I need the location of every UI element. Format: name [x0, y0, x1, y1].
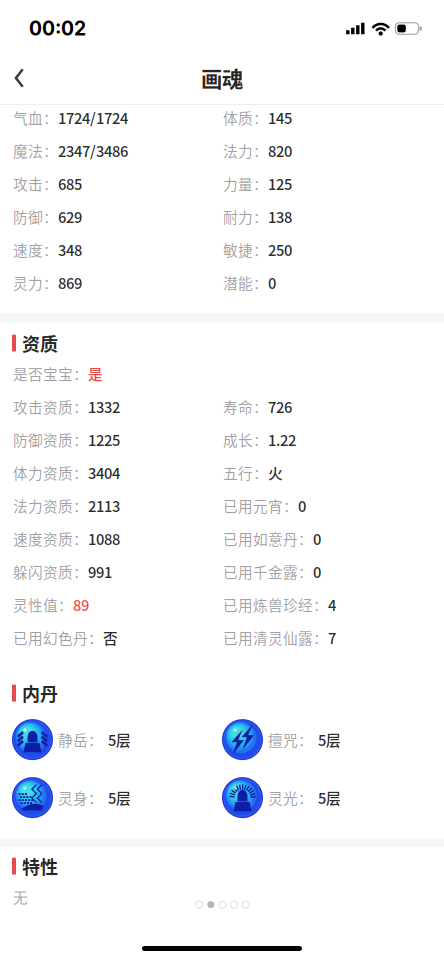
staticText: 已用元宵： — [223, 495, 298, 516]
staticText: 法力资质： — [13, 495, 88, 516]
staticText: 0 — [298, 495, 306, 516]
staticText: 1225 — [88, 429, 120, 450]
staticText: 灵身： — [58, 787, 103, 808]
staticText: 特性 — [22, 853, 58, 879]
staticText: 否 — [103, 627, 118, 648]
staticText: 速度资质： — [13, 528, 88, 549]
staticText: 5层 — [108, 729, 131, 750]
staticText: 成长： — [223, 429, 268, 450]
staticText: 2113 — [88, 495, 120, 516]
staticText: 1332 — [88, 396, 120, 417]
staticText: 已用幻色丹： — [13, 627, 103, 648]
staticText: 资质 — [22, 330, 58, 356]
staticText: 气血： — [13, 107, 58, 128]
staticText: 89 — [73, 594, 89, 615]
staticText: 潜能： — [223, 272, 268, 293]
staticText: 攻击： — [13, 173, 58, 194]
staticText: 无 — [13, 887, 28, 908]
staticText: 是 — [88, 363, 103, 384]
staticText: 1.22 — [268, 429, 296, 450]
staticText: 躲闪资质： — [13, 561, 88, 582]
staticText: 力量： — [223, 173, 268, 194]
staticText: 125 — [268, 173, 292, 194]
staticText: 2347/3486 — [58, 140, 128, 161]
staticText: 画魂 — [201, 63, 243, 93]
staticText: 5层 — [108, 787, 131, 808]
staticText: 4 — [328, 594, 336, 615]
staticText: 火 — [268, 462, 283, 483]
staticText: 防御资质： — [13, 429, 88, 450]
staticText: 擅咒： — [268, 729, 313, 750]
staticText: 0 — [268, 272, 276, 293]
staticText: 内丹 — [22, 680, 58, 706]
staticText: 灵性值： — [13, 594, 73, 615]
staticText: 820 — [268, 140, 292, 161]
staticText: 已用如意丹： — [223, 528, 313, 549]
staticText: 348 — [58, 239, 82, 260]
staticText: 寿命： — [223, 396, 268, 417]
staticText: 魔法： — [13, 140, 58, 161]
staticText: 体质： — [223, 107, 268, 128]
staticText: 已用炼兽珍经： — [223, 594, 328, 615]
button[interactable]: Back — [0, 56, 34, 100]
staticText: 法力： — [223, 140, 268, 161]
staticText: 5层 — [318, 729, 341, 750]
staticText: 防御： — [13, 206, 58, 227]
staticText: 991 — [88, 561, 112, 582]
staticText: 5层 — [318, 787, 341, 808]
staticText: 7 — [328, 627, 336, 648]
staticText: 1724/1724 — [58, 107, 128, 128]
staticText: 869 — [58, 272, 82, 293]
staticText: 静岳： — [58, 729, 103, 750]
staticText: 685 — [58, 173, 82, 194]
staticText: 攻击资质： — [13, 396, 88, 417]
staticText: 已用千金露： — [223, 561, 313, 582]
staticText: 灵光： — [268, 787, 313, 808]
staticText: 速度： — [13, 239, 58, 260]
staticText: 726 — [268, 396, 292, 417]
staticText: 是否宝宝： — [13, 363, 88, 384]
staticText: 体力资质： — [13, 462, 88, 483]
staticText: 耐力： — [223, 206, 268, 227]
staticText: 已用清灵仙露： — [223, 627, 328, 648]
staticText: 138 — [268, 206, 292, 227]
staticText: 灵力： — [13, 272, 58, 293]
staticText: 0 — [313, 528, 321, 549]
staticText: 0 — [313, 561, 321, 582]
staticText: 145 — [268, 107, 292, 128]
staticText: 629 — [58, 206, 82, 227]
staticText: 五行： — [223, 462, 268, 483]
staticText: 3404 — [88, 462, 120, 483]
staticText: 250 — [268, 239, 292, 260]
staticText: 1088 — [88, 528, 120, 549]
staticText: 00:02 — [29, 17, 86, 40]
staticText: 敏捷： — [223, 239, 268, 260]
